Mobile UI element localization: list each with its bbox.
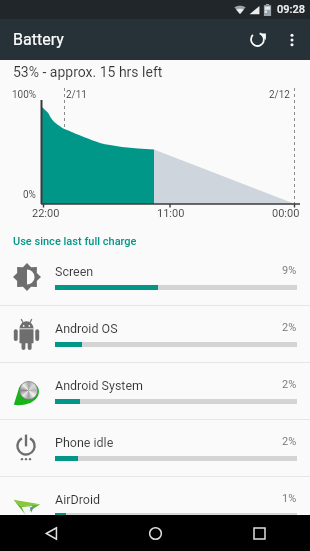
- button[interactable]: Phone idle: [0, 420, 310, 477]
- button[interactable]: Android System: [0, 363, 310, 420]
- staticText: 09:28: [277, 3, 305, 16]
- staticText: Battery: [13, 30, 64, 49]
- staticText: 00:00: [272, 207, 300, 220]
- staticText: AirDroid: [55, 492, 100, 507]
- staticText: Screen: [55, 264, 94, 279]
- button[interactable]: AirDroid: [0, 477, 310, 534]
- staticText: Android System: [55, 378, 144, 393]
- staticText: 2%: [282, 378, 297, 391]
- button[interactable]: Screen: [0, 249, 310, 306]
- staticText: 2%: [282, 435, 297, 448]
- button[interactable]: Recents: [238, 515, 280, 551]
- staticText: 9%: [282, 264, 297, 277]
- staticText: 100%: [12, 89, 37, 101]
- staticText: Phone idle: [55, 435, 114, 450]
- button[interactable]: Back: [30, 515, 72, 551]
- button[interactable]: Refresh: [238, 19, 276, 60]
- staticText: 0%: [23, 189, 36, 201]
- staticText: 22:00: [32, 207, 60, 220]
- staticText: 11:00: [157, 207, 185, 220]
- staticText: 53% - approx. 15 hrs left: [13, 64, 163, 80]
- staticText: Use since last full charge: [13, 235, 137, 248]
- button[interactable]: More options: [276, 19, 308, 60]
- button[interactable]: Home: [134, 515, 176, 551]
- staticText: Android OS: [55, 321, 118, 336]
- staticText: 2/11: [66, 89, 87, 101]
- staticText: 1%: [282, 492, 297, 505]
- button[interactable]: Android OS: [0, 306, 310, 363]
- staticText: 2/12: [269, 89, 290, 101]
- staticText: 2%: [282, 321, 297, 334]
